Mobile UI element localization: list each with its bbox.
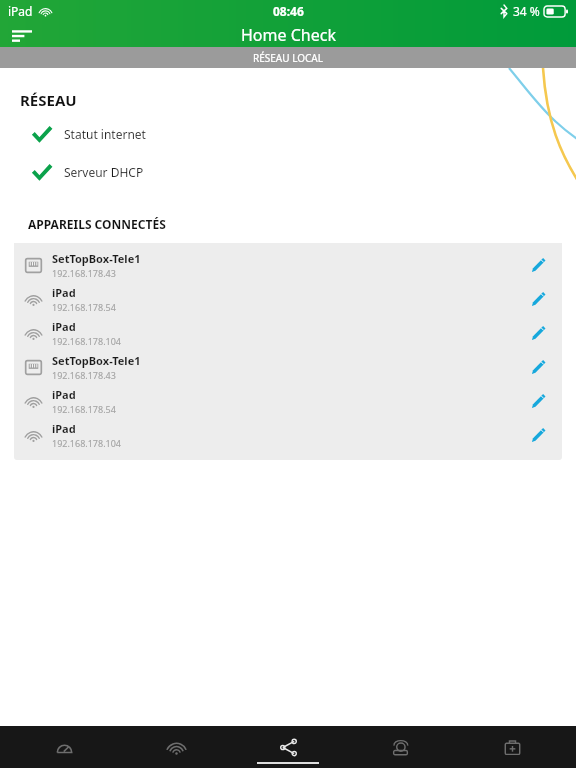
button[interactable]: Edit iPad	[514, 282, 562, 316]
button[interactable]: iPad	[14, 316, 562, 350]
staticText: Home Check	[241, 24, 336, 46]
staticText: 192.168.178.54	[52, 301, 116, 313]
staticText: iPad	[52, 387, 76, 402]
button[interactable]: Tools	[464, 726, 560, 768]
button[interactable]: iPad	[14, 282, 562, 316]
button[interactable]: Speed test	[16, 726, 112, 768]
staticText: iPad	[52, 285, 76, 300]
staticText: 08:46	[273, 3, 304, 19]
button[interactable]: Serveur DHCP	[20, 164, 576, 180]
staticText: 34 %	[513, 3, 540, 19]
button[interactable]: Statut internet	[20, 126, 576, 142]
button[interactable]: Network	[240, 726, 336, 768]
staticText: iPad	[52, 421, 76, 436]
button[interactable]: Phone	[352, 726, 448, 768]
button[interactable]: Edit iPad	[514, 316, 562, 350]
staticText: Statut internet	[64, 126, 146, 142]
staticText: 192.168.178.104	[52, 335, 122, 347]
button[interactable]: Edit SetTopBox-Tele1	[514, 350, 562, 384]
button[interactable]: Edit SetTopBox-Tele1	[514, 248, 562, 282]
staticText: APPAREILS CONNECTÉS	[28, 216, 166, 232]
button[interactable]: iPad	[14, 418, 562, 452]
staticText: Serveur DHCP	[64, 164, 144, 180]
staticText: SetTopBox-Tele1	[52, 251, 141, 266]
staticText: RÉSEAU LOCAL	[253, 51, 323, 65]
staticText: 192.168.178.104	[52, 437, 122, 449]
button[interactable]: iPad	[14, 384, 562, 418]
button[interactable]: Wi-Fi	[128, 726, 224, 768]
staticText: RÉSEAU	[20, 90, 77, 110]
button[interactable]: Edit iPad	[514, 384, 562, 418]
staticText: SetTopBox-Tele1	[52, 353, 141, 368]
button[interactable]: Edit iPad	[514, 418, 562, 452]
button[interactable]: Menu	[0, 22, 44, 47]
button[interactable]: SetTopBox-Tele1	[14, 350, 562, 384]
button[interactable]: SetTopBox-Tele1	[14, 248, 562, 282]
staticText: 192.168.178.43	[52, 369, 116, 381]
staticText: 192.168.178.54	[52, 403, 116, 415]
staticText: iPad	[52, 319, 76, 334]
staticText: iPad	[8, 3, 33, 19]
staticText: 192.168.178.43	[52, 267, 116, 279]
